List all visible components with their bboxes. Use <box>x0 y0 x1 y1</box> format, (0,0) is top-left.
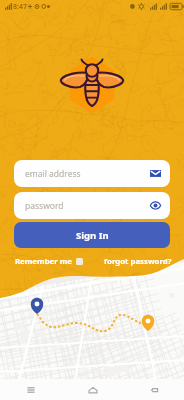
staticText: email address <box>25 168 81 180</box>
button[interactable]: Back <box>123 379 184 400</box>
button[interactable]: password <box>14 192 170 219</box>
button[interactable]: Recents <box>0 379 62 400</box>
staticText: 8:47 <box>13 2 27 12</box>
button[interactable]: Remember me <box>15 256 83 267</box>
staticText: password <box>25 200 64 212</box>
button[interactable]: email address <box>14 160 170 187</box>
other: Show password <box>150 201 161 210</box>
staticText: Sign In <box>76 229 109 242</box>
other: Email <box>150 169 161 178</box>
staticText: Remember me <box>15 256 72 267</box>
button[interactable]: Sign In <box>14 222 170 248</box>
button[interactable]: Home <box>62 379 123 400</box>
button[interactable]: forgot password? <box>104 256 172 267</box>
